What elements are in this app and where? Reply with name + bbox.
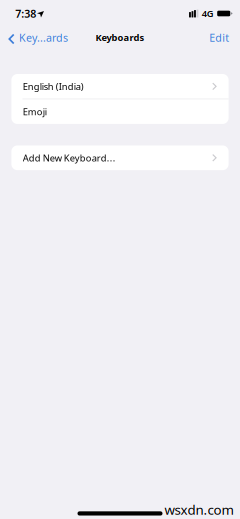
- staticText: wsxdn.com: [164, 501, 233, 518]
- staticText: Emoji: [23, 105, 47, 118]
- staticText: Key...ards: [19, 30, 68, 45]
- staticText: 4G: [202, 7, 214, 20]
- button[interactable]: Back to Keyboards: [0, 27, 68, 48]
- button[interactable]: Edit: [209, 27, 240, 48]
- staticText: 7:38: [15, 6, 36, 21]
- button[interactable]: Emoji: [11, 99, 229, 124]
- button[interactable]: English (India): [11, 74, 229, 99]
- staticText: Edit: [209, 30, 229, 45]
- staticText: Add New Keyboard...: [23, 152, 116, 164]
- staticText: Keyboards: [95, 31, 144, 44]
- button[interactable]: Add New Keyboard...: [11, 145, 229, 170]
- staticText: English (India): [23, 80, 84, 93]
